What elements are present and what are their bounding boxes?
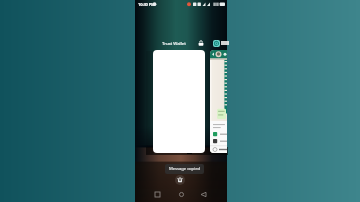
button[interactable]: Lock app	[198, 40, 204, 46]
staticText: Message copied	[169, 166, 200, 172]
button[interactable]: Home	[176, 189, 187, 200]
staticText: 10:30 PM	[138, 2, 155, 7]
button[interactable]: Clear all recent apps	[175, 175, 185, 185]
button[interactable]: Recent apps	[152, 189, 163, 200]
staticText: Trust Wallet	[162, 40, 186, 46]
button[interactable]	[153, 50, 205, 153]
button[interactable]: Trust Wallet	[150, 38, 198, 47]
button[interactable]	[213, 40, 220, 47]
button[interactable]: Message copied	[169, 166, 200, 172]
button[interactable]	[210, 50, 227, 153]
button[interactable]: Back	[198, 189, 209, 200]
